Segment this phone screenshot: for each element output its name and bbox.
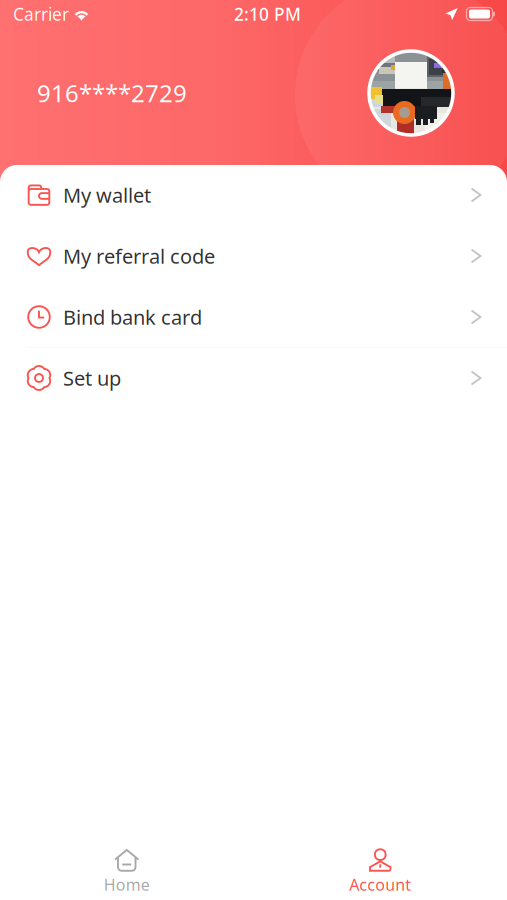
button[interactable]: Bind bank card: [0, 287, 507, 348]
button[interactable]: Account: [253, 840, 507, 900]
staticText: Carrier: [13, 2, 69, 25]
staticText: 2:10 PM: [234, 2, 301, 25]
staticText: My wallet: [63, 182, 151, 208]
staticText: Home: [104, 874, 150, 895]
button[interactable]: My referral code: [0, 226, 507, 287]
button[interactable]: Home: [0, 840, 253, 900]
button[interactable]: My wallet: [0, 165, 507, 226]
staticText: My referral code: [63, 243, 215, 269]
staticText: Bind bank card: [63, 304, 202, 330]
staticText: 916****2729: [37, 77, 187, 109]
staticText: Account: [349, 874, 411, 895]
staticText: Set up: [63, 365, 121, 391]
button[interactable]: Set up: [0, 348, 507, 409]
